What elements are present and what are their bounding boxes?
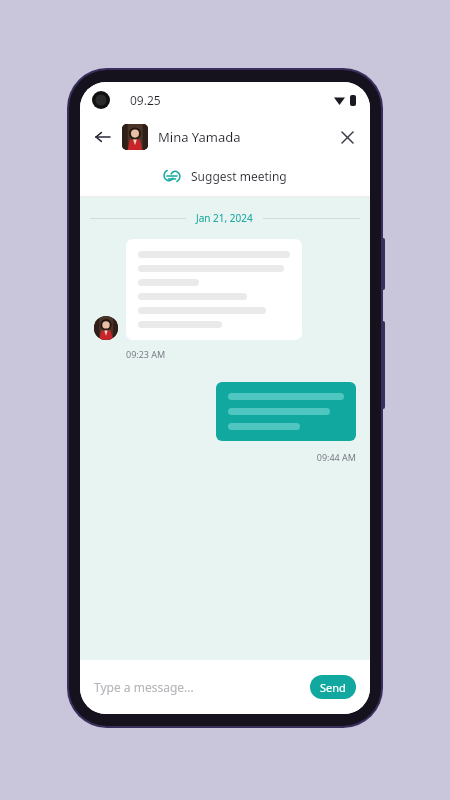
button[interactable] xyxy=(126,239,302,340)
staticText: Send xyxy=(320,680,346,695)
button[interactable]: Type a message... xyxy=(94,679,310,695)
button[interactable]: Back xyxy=(90,124,116,150)
staticText: 09:23 AM xyxy=(126,348,166,360)
staticText: 09.25 xyxy=(130,92,161,108)
button[interactable]: Close xyxy=(334,124,360,150)
staticText: Jan 21, 2024 xyxy=(196,211,253,225)
button[interactable]: Suggest meeting xyxy=(80,156,370,196)
button[interactable]: Mina Yamada xyxy=(158,128,334,146)
button[interactable] xyxy=(216,382,356,441)
staticText: Type a message... xyxy=(94,679,194,695)
button[interactable]: Send xyxy=(310,675,356,699)
staticText: 09:44 AM xyxy=(316,451,356,463)
staticText: Suggest meeting xyxy=(191,168,287,184)
